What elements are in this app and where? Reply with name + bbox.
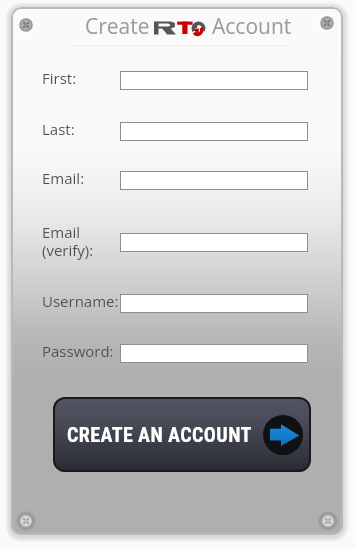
button[interactable]: First: xyxy=(120,71,308,90)
staticText: First: xyxy=(42,68,77,88)
staticText: Last: xyxy=(42,119,75,139)
button[interactable]: Username: xyxy=(120,294,308,313)
staticText: Username: xyxy=(42,291,119,311)
other: Panel screw xyxy=(15,14,37,36)
button[interactable]: Password: xyxy=(120,344,308,363)
button[interactable]: Email (verify): xyxy=(120,233,308,252)
button[interactable]: CREATE AN ACCOUNT xyxy=(53,397,311,472)
button[interactable]: Last: xyxy=(120,122,308,141)
staticText: Create xyxy=(85,12,150,41)
button[interactable]: Email: xyxy=(120,171,308,190)
other: Panel screw xyxy=(15,510,37,532)
other: Panel screw xyxy=(317,510,339,532)
staticText: Account xyxy=(212,12,292,41)
staticText: Email (verify): xyxy=(42,222,94,261)
other: Panel screw xyxy=(316,12,338,34)
other: RT logo xyxy=(150,20,212,36)
staticText: CREATE AN ACCOUNT xyxy=(67,423,252,446)
staticText: Email: xyxy=(42,168,85,188)
staticText: Password: xyxy=(42,341,114,361)
